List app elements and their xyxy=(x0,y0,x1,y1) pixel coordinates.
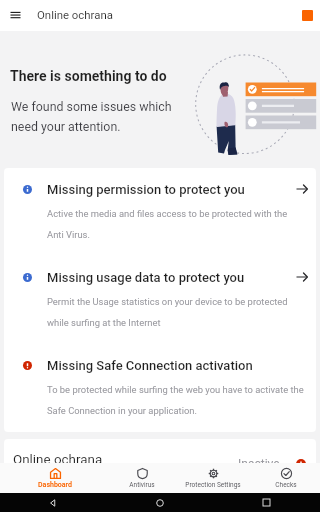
staticText: Protection Settings xyxy=(185,481,241,489)
staticText: Permit the Usage statistics on your devi… xyxy=(47,296,288,329)
button[interactable]: Checks xyxy=(261,463,311,493)
staticText: Missing permission to protect you xyxy=(47,182,245,197)
button[interactable]: Back xyxy=(0,493,106,512)
staticText: To be protected while surfing the web yo… xyxy=(47,384,304,417)
staticText: We found some issues which need your att… xyxy=(11,99,172,134)
staticText: Dashboard xyxy=(38,481,72,489)
staticText: Active the media and files access to be … xyxy=(47,208,288,241)
staticText: Online ochrana xyxy=(37,8,113,21)
button[interactable]: Menu xyxy=(9,9,22,22)
button[interactable]: Missing Safe Connection activation xyxy=(4,344,316,432)
button[interactable]: Online ochrana xyxy=(4,439,316,473)
button[interactable]: Missing usage data to protect you xyxy=(4,256,316,344)
staticText: There is something to do xyxy=(10,68,167,84)
other: Open xyxy=(293,268,311,286)
button[interactable]: Missing permission to protect you xyxy=(4,168,316,256)
staticText: Online ochrana xyxy=(13,452,103,468)
staticText: Inactive xyxy=(238,457,280,471)
staticText: Missing usage data to protect you xyxy=(47,270,245,285)
other: Open xyxy=(293,180,311,198)
button[interactable]: Protection Settings xyxy=(177,463,249,493)
staticText: Missing Safe Connection activation xyxy=(47,358,253,373)
button[interactable]: Antivirus xyxy=(117,463,167,493)
button[interactable]: Recent apps xyxy=(213,493,320,512)
staticText: Checks xyxy=(275,481,297,489)
button[interactable]: Dashboard xyxy=(31,463,79,493)
button[interactable]: Application icon xyxy=(296,4,318,26)
button[interactable]: Home xyxy=(106,493,213,512)
staticText: Antivirus xyxy=(129,481,155,489)
